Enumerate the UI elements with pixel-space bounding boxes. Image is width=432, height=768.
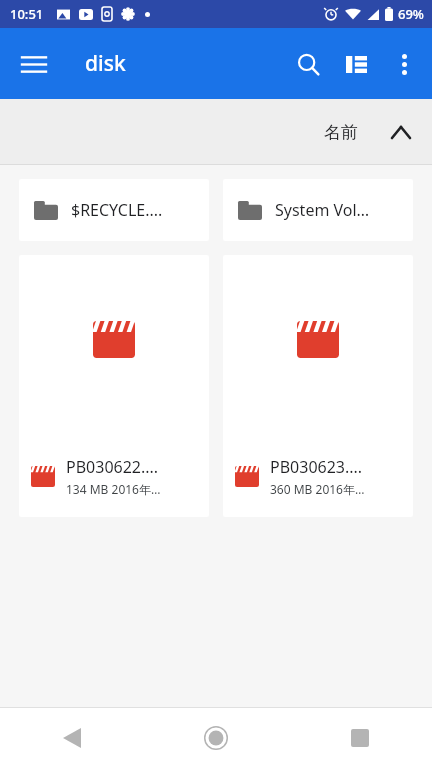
staticText: $RECYCLE.... [71,199,163,221]
staticText: disk [85,49,126,78]
staticText: 10:51 [10,5,44,23]
staticText: PB030623.... [270,456,363,478]
button[interactable]: PB030622.... [19,255,209,517]
button[interactable]: Navigation menu [10,40,58,88]
staticText: 69% [398,5,424,23]
staticText: PB030622.... [66,456,159,478]
button[interactable]: Home [144,708,288,768]
button[interactable]: System Vol… [223,179,413,241]
button[interactable]: PB030623.... [223,255,413,517]
staticText: 134 MB 2016年… [66,481,161,497]
button[interactable]: More options [380,40,428,88]
button[interactable]: Back [0,708,144,768]
staticText: System Vol… [275,199,370,221]
button[interactable]: 名前 [324,115,418,149]
staticText: 名前 [324,122,358,143]
button[interactable]: $RECYCLE.... [19,179,209,241]
staticText: 360 MB 2016年… [270,481,365,497]
button[interactable]: View list [332,40,380,88]
button[interactable]: Recent apps [288,708,432,768]
button[interactable]: Search [284,40,332,88]
other: Sort ascending [384,115,418,149]
